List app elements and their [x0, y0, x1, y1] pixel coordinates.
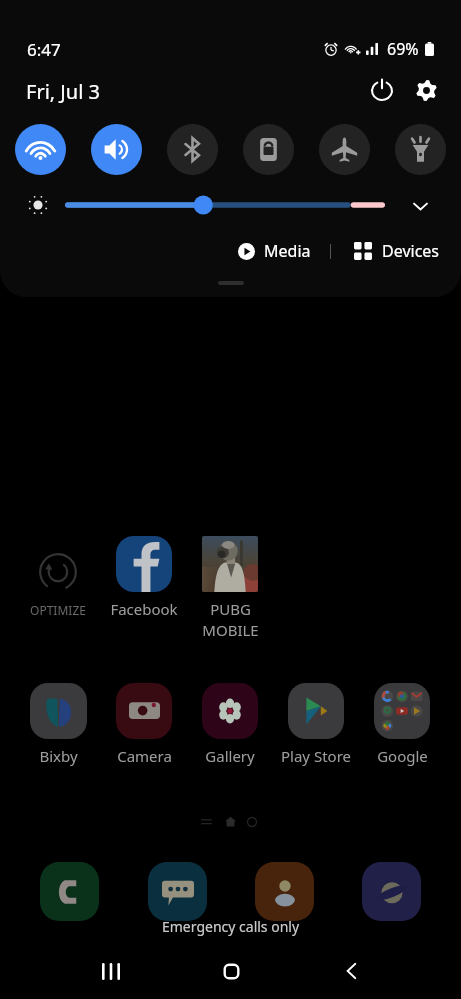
staticText: Devices: [382, 240, 440, 262]
button[interactable]: Home: [206, 946, 256, 996]
staticText: OPTIMIZE: [30, 602, 86, 618]
button[interactable]: Media: [238, 238, 311, 264]
button[interactable]: Expand quick settings: [406, 192, 434, 220]
button[interactable]: Internet: [361, 861, 421, 921]
button[interactable]: Bixby: [15, 683, 101, 766]
button[interactable]: PUBG MOBILE: [187, 536, 273, 641]
staticText: Bixby: [39, 746, 78, 766]
button[interactable]: Brightness: [63, 194, 387, 216]
button[interactable]: Airplane mode: [319, 124, 370, 175]
button[interactable]: Bluetooth: [167, 124, 218, 175]
staticText: Gallery: [205, 746, 255, 766]
button[interactable]: Power: [366, 74, 398, 106]
staticText: Facebook: [110, 599, 178, 619]
button[interactable]: Settings: [410, 74, 442, 106]
staticText: Play Store: [281, 746, 351, 766]
staticText: Emergency calls only: [162, 917, 300, 936]
button[interactable]: Gallery: [187, 683, 273, 766]
button[interactable]: Recents: [86, 946, 136, 996]
button[interactable]: Auto rotate: [243, 124, 294, 175]
button[interactable]: Google: [359, 683, 445, 766]
button[interactable]: Camera: [101, 683, 187, 766]
button[interactable]: Back: [326, 946, 376, 996]
staticText: Google: [377, 746, 428, 766]
button[interactable]: Play Store: [273, 683, 359, 766]
button[interactable]: Messages: [147, 861, 207, 921]
button[interactable]: Sound: [91, 124, 142, 175]
button[interactable]: Contacts: [254, 861, 314, 921]
staticText: 6:47: [27, 38, 61, 61]
button[interactable]: Phone: [39, 861, 99, 921]
staticText: 69%: [387, 38, 419, 60]
button[interactable]: Devices: [354, 238, 440, 264]
button[interactable]: Wi-Fi: [15, 124, 66, 175]
staticText: PUBG MOBILE: [202, 599, 259, 641]
button[interactable]: Facebook: [101, 536, 187, 619]
staticText: Camera: [117, 746, 172, 766]
button[interactable]: OPTIMIZE: [15, 536, 101, 618]
staticText: Media: [264, 240, 311, 262]
button[interactable]: Flashlight: [395, 124, 446, 175]
staticText: Fri, Jul 3: [26, 78, 100, 105]
